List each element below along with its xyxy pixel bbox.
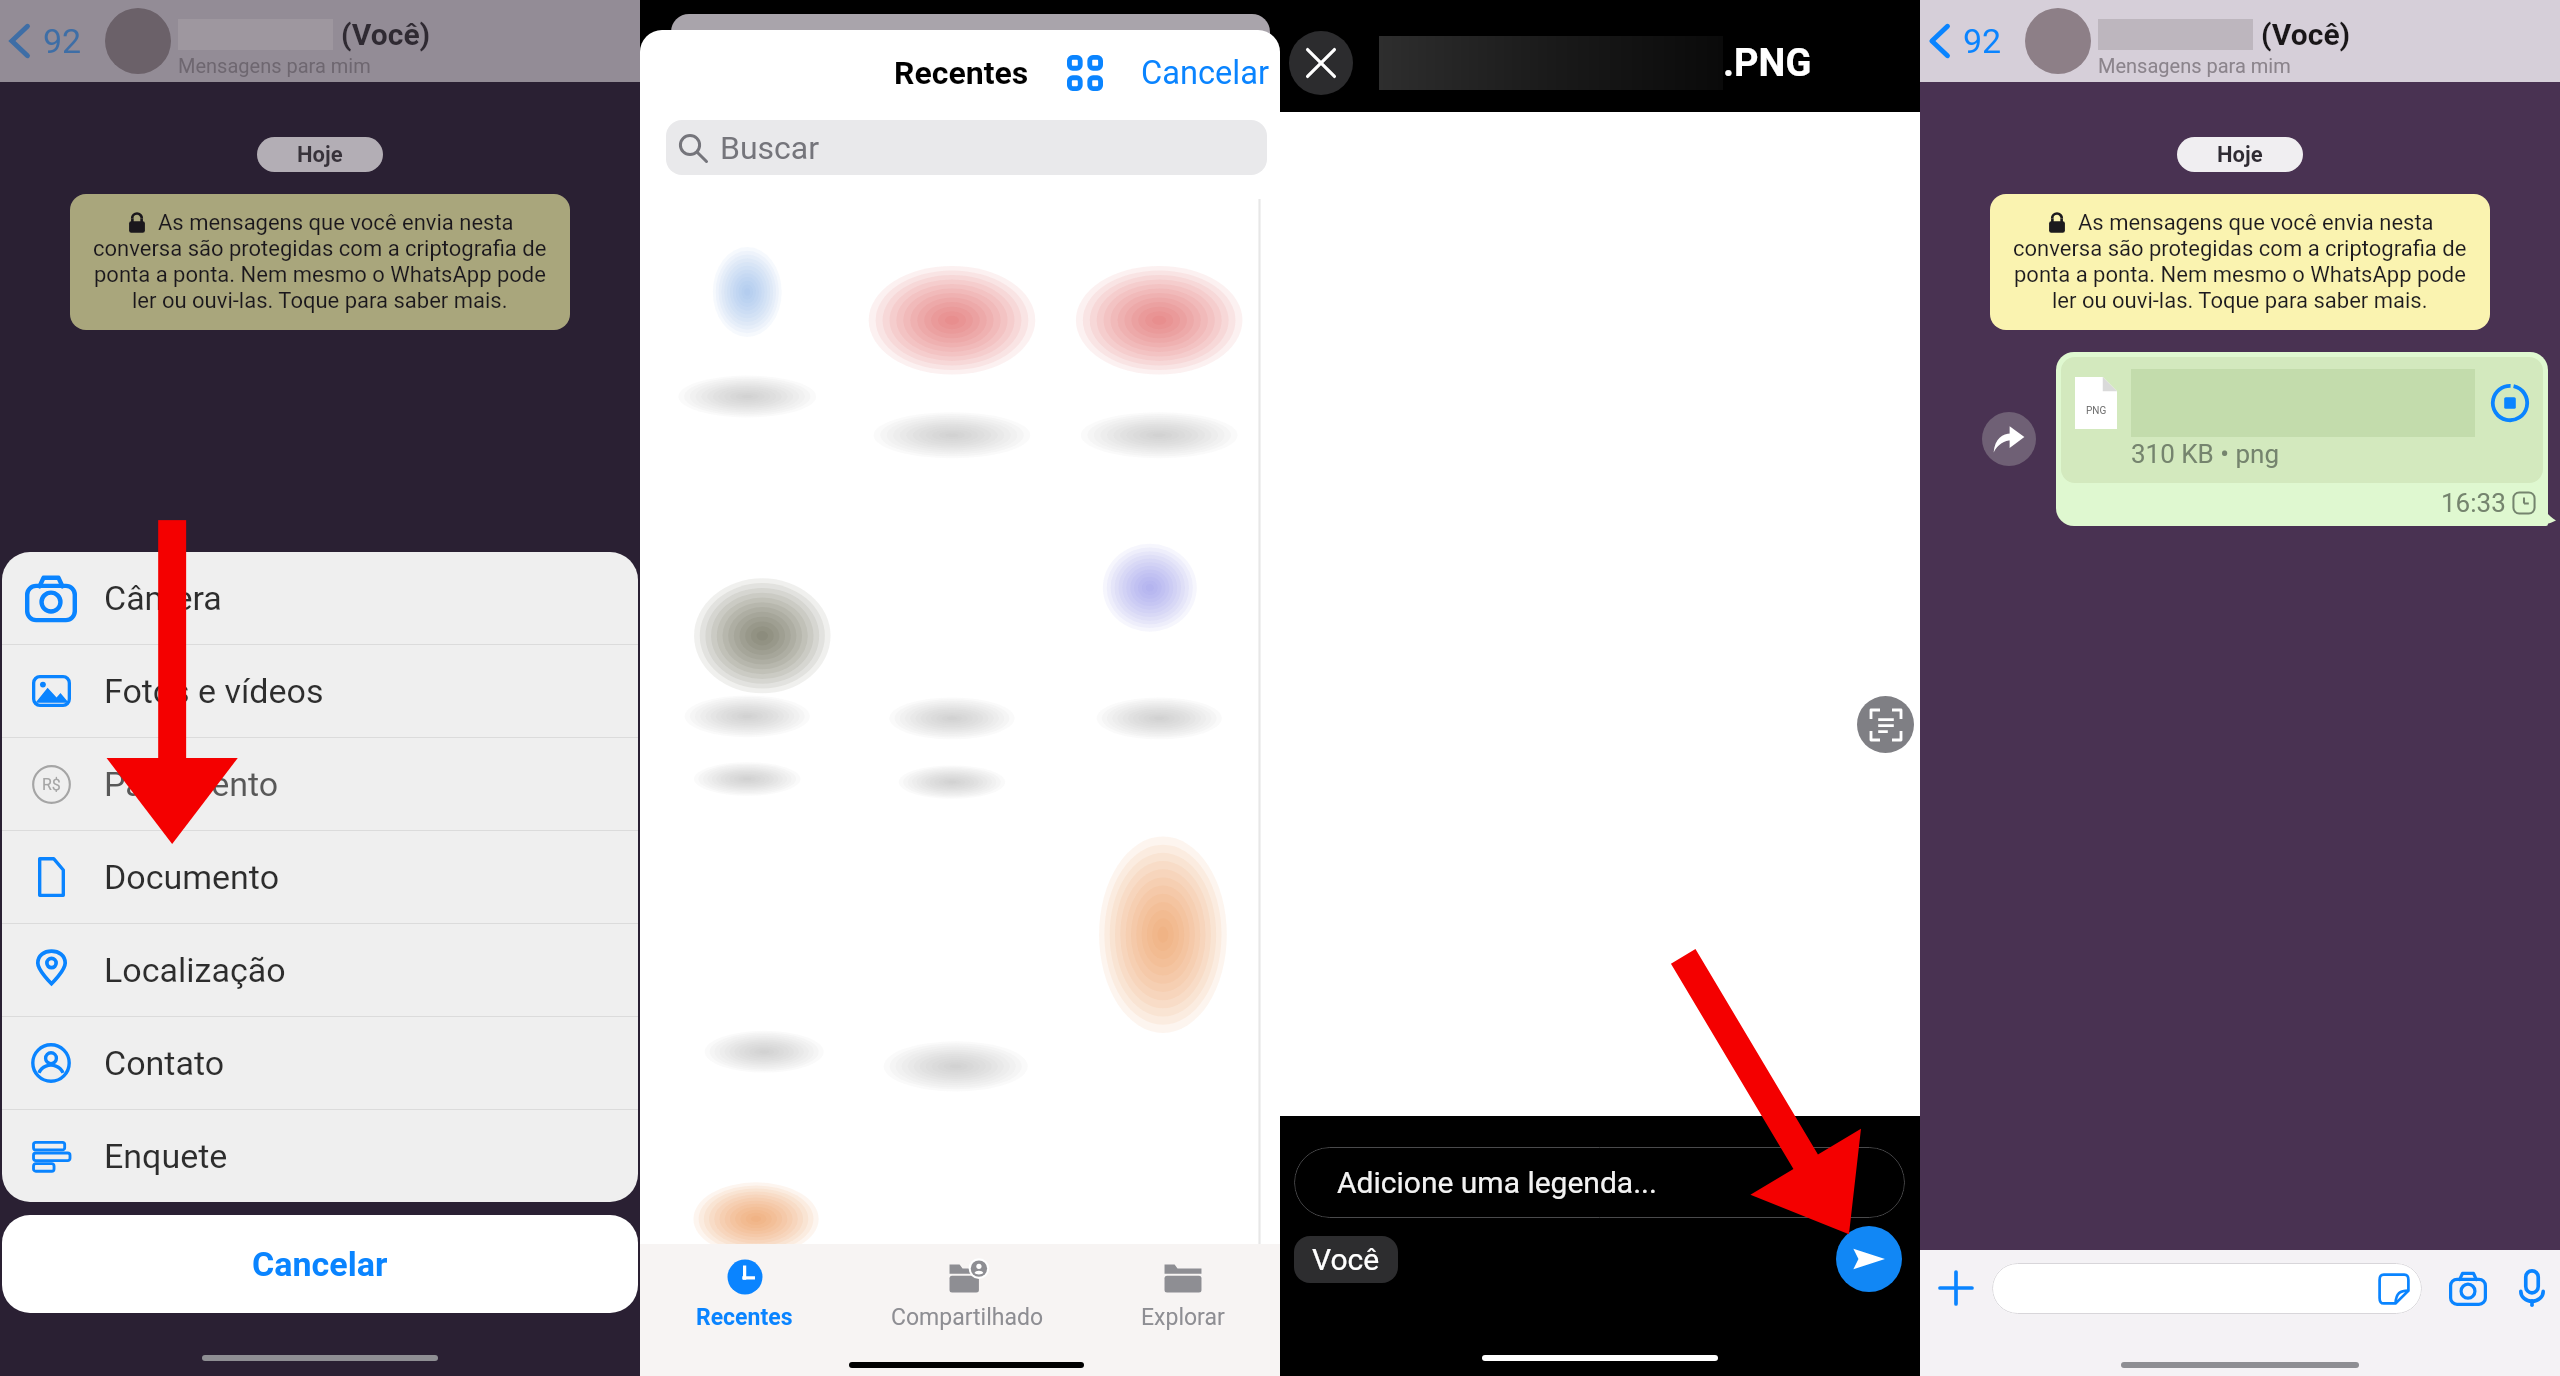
button[interactable]: Buscar — [666, 120, 1267, 175]
staticText: Contato — [104, 1043, 225, 1083]
button[interactable]: Attach — [1930, 1262, 1982, 1314]
button[interactable]: Contato — [2, 1017, 638, 1109]
staticText: (Você) — [341, 17, 431, 52]
staticText: 310 KB • png — [2131, 439, 2280, 469]
button[interactable]: Compartilhado — [879, 1252, 1056, 1335]
staticText: Você — [1312, 1242, 1380, 1277]
button[interactable]: Você — [1294, 1236, 1398, 1283]
button[interactable]: Back — [1924, 11, 2008, 71]
staticText: Mensagens para mim — [178, 54, 371, 77]
staticText: Câmera — [104, 578, 222, 618]
button[interactable]: Hoje — [2177, 137, 2303, 172]
button[interactable]: R$ — [2, 738, 638, 830]
button[interactable]: Documento — [2, 831, 638, 923]
button[interactable]: Voice message — [2512, 1262, 2552, 1314]
button[interactable]: Fotos e vídeos — [2, 645, 638, 737]
staticText: Localização — [104, 950, 286, 990]
button[interactable]: Explorar — [1129, 1252, 1237, 1335]
button[interactable]: Back — [4, 11, 88, 71]
button[interactable]: Camera — [2442, 1262, 2494, 1314]
staticText: 92 — [43, 21, 82, 61]
staticText: Enquete — [104, 1136, 228, 1176]
staticText: conversa são protegidas com a criptograf… — [93, 236, 547, 262]
staticText: ler ou ouvi-las. Toque para saber mais. — [132, 288, 508, 314]
button[interactable]: Stickers — [2376, 1271, 2412, 1307]
button[interactable]: As mensagens que você envia nesta — [70, 194, 570, 330]
staticText: Compartilhado — [891, 1304, 1044, 1331]
staticText: .PNG — [1723, 41, 1812, 86]
button[interactable]: Grid view — [1059, 47, 1111, 99]
staticText: ponta a ponta. Nem mesmo o WhatsApp pode — [2014, 262, 2466, 288]
button[interactable]: Adicione uma legenda... — [1294, 1147, 1905, 1218]
button[interactable]: Scan text — [1857, 696, 1914, 753]
staticText: Documento — [104, 857, 280, 897]
button[interactable]: Stickers — [1992, 1263, 2422, 1314]
button[interactable]: As mensagens que você envia nesta — [1990, 194, 2490, 330]
staticText: 92 — [1963, 21, 2002, 61]
staticText: 16:33 — [2441, 488, 2506, 518]
button[interactable]: Close — [1289, 31, 1353, 95]
staticText: As mensagens que você envia nesta — [2078, 210, 2434, 236]
staticText: conversa são protegidas com a criptograf… — [2013, 236, 2467, 262]
staticText: Explorar — [1141, 1304, 1225, 1331]
staticText: (Você) — [2261, 17, 2351, 52]
button[interactable]: Cancelar — [2, 1215, 638, 1313]
staticText: Pagamento — [104, 764, 279, 804]
staticText: Hoje — [297, 142, 343, 168]
staticText: R$ — [42, 775, 61, 794]
button[interactable]: Recentes — [684, 1252, 805, 1335]
staticText: Buscar — [720, 129, 820, 167]
staticText: Mensagens para mim — [2098, 54, 2291, 77]
staticText: Fotos e vídeos — [104, 671, 324, 711]
staticText: Adicione uma legenda... — [1337, 1165, 1657, 1200]
staticText: Cancelar — [1141, 54, 1269, 92]
button[interactable]: PNG — [2056, 352, 2548, 526]
staticText: As mensagens que você envia nesta — [158, 210, 514, 236]
staticText: Recentes — [894, 54, 1029, 92]
button[interactable]: Localização — [2, 924, 638, 1016]
button[interactable]: Forward — [1982, 412, 2036, 466]
button[interactable]: Câmera — [2, 552, 638, 644]
button[interactable]: Send — [1836, 1226, 1902, 1292]
button[interactable]: Cancelar — [1141, 42, 1269, 104]
button[interactable]: Enquete — [2, 1110, 638, 1202]
staticText: PNG — [2086, 405, 2107, 417]
button[interactable]: Hoje — [257, 137, 383, 172]
staticText: Hoje — [2217, 142, 2263, 168]
staticText: Cancelar — [252, 1244, 388, 1284]
staticText: Recentes — [696, 1304, 793, 1331]
staticText: ponta a ponta. Nem mesmo o WhatsApp pode — [94, 262, 546, 288]
staticText: ler ou ouvi-las. Toque para saber mais. — [2052, 288, 2428, 314]
